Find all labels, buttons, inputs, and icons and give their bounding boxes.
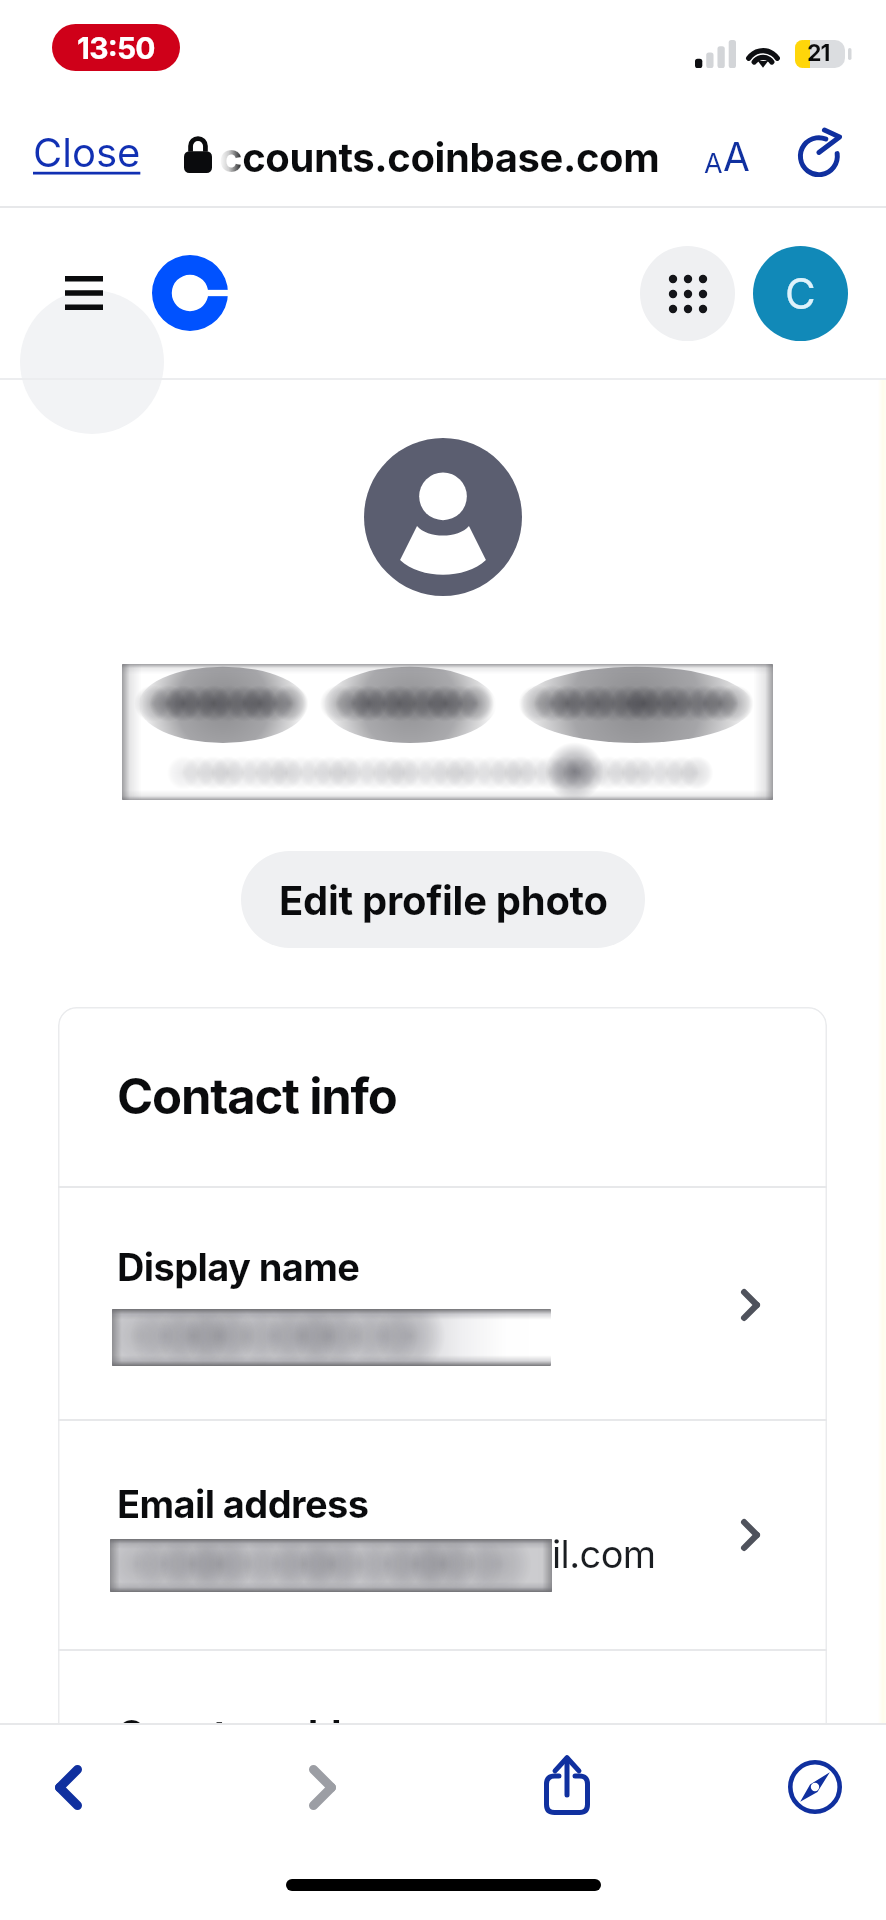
button[interactable]: Coinbase home	[152, 255, 228, 331]
staticText: Display name	[117, 1244, 360, 1290]
staticText: Contact info	[117, 1067, 397, 1126]
button[interactable]: Close	[28, 120, 146, 184]
staticText: 13:50	[77, 30, 155, 66]
button[interactable]: Text size	[700, 127, 754, 186]
staticText: C	[785, 268, 816, 319]
button[interactable]: Open in Safari	[773, 1745, 857, 1829]
staticText: 21	[807, 39, 830, 67]
staticText: il.com	[552, 1531, 656, 1577]
button[interactable]: Display name	[58, 1188, 827, 1419]
button[interactable]: Account	[753, 246, 848, 341]
staticText: Country address	[117, 1711, 419, 1757]
staticText: Email address	[117, 1481, 369, 1527]
button[interactable]: Country address	[58, 1651, 827, 1807]
staticText: Close	[33, 128, 141, 176]
staticText: A	[723, 133, 750, 180]
button[interactable]: Apps	[640, 246, 735, 341]
button[interactable]: Edit profile photo	[241, 851, 645, 948]
button[interactable]: Forward	[280, 1745, 364, 1829]
staticText: A	[704, 147, 723, 180]
button[interactable]: ccounts.coinbase.com	[219, 127, 660, 187]
staticText: Edit profile photo	[279, 876, 608, 924]
button[interactable]: Back	[26, 1745, 110, 1829]
button[interactable]: Menu	[52, 261, 116, 325]
staticText: ccounts.coinbase.com	[219, 133, 660, 181]
button[interactable]: Reload	[793, 123, 851, 181]
button[interactable]: Share	[525, 1743, 609, 1827]
button[interactable]: Email address	[58, 1421, 827, 1649]
